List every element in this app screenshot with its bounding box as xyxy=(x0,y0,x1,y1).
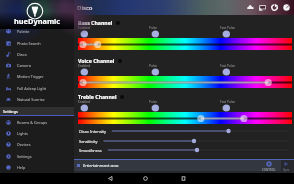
button[interactable]: Cast xyxy=(256,0,268,15)
staticText: Help xyxy=(17,165,26,170)
button[interactable]: Motion Trigger xyxy=(0,71,74,82)
staticText: Fast Pulse xyxy=(220,26,235,30)
staticText: Palette xyxy=(17,29,30,34)
staticText: Photo Search xyxy=(17,41,41,46)
button[interactable]: Entertainment area xyxy=(74,160,254,171)
staticText: Enabled xyxy=(78,64,91,68)
staticText: Fast Pulse xyxy=(220,64,235,68)
staticText: Sensitivity xyxy=(79,139,98,144)
button[interactable]: Devices xyxy=(0,139,74,150)
button[interactable]: Toggle Bass Channel xyxy=(78,19,120,26)
button[interactable]: Palette xyxy=(0,26,74,37)
staticText: CONTROL xyxy=(262,168,276,172)
staticText: Fast Pulse xyxy=(220,100,235,104)
button[interactable]: Disco xyxy=(0,49,74,60)
staticText: Pulse xyxy=(149,26,158,30)
staticText: Devices xyxy=(17,142,31,147)
staticText: Enabled xyxy=(78,100,91,104)
staticText: Motion Trigger xyxy=(17,74,44,79)
staticText: Settings xyxy=(17,154,32,159)
staticText: Rooms & Groups xyxy=(17,120,48,125)
button[interactable]: Disco Intensity xyxy=(78,126,292,136)
button[interactable]: Fast Pulse xyxy=(220,26,235,37)
button[interactable]: Toggle Treble Channel xyxy=(78,93,124,100)
staticText: Smoothness xyxy=(79,148,102,153)
button[interactable]: Settings xyxy=(0,151,74,162)
button[interactable]: CONTROL xyxy=(260,160,278,173)
button[interactable]: Fast Pulse xyxy=(220,64,235,75)
button[interactable]: Pulse xyxy=(149,100,159,111)
button[interactable]: Back xyxy=(105,173,116,184)
staticText: Bass Channel xyxy=(78,19,113,26)
button[interactable]: Help xyxy=(0,162,74,173)
button[interactable]: Natural Sunrise xyxy=(0,94,74,105)
staticText: Voice Channel xyxy=(78,57,115,64)
staticText: Treble Channel xyxy=(78,93,117,100)
button[interactable]: Fast Pulse xyxy=(220,100,235,111)
button[interactable]: Enabled xyxy=(78,26,91,37)
button[interactable]: Photo Search xyxy=(0,38,74,49)
button[interactable]: Toggle Voice Channel xyxy=(78,57,122,64)
staticText: Camera xyxy=(17,63,31,68)
button[interactable]: Recent apps xyxy=(178,173,189,184)
button[interactable]: Treble Channel colour range xyxy=(78,112,292,124)
staticText: Lights xyxy=(17,131,28,136)
button[interactable]: More options xyxy=(280,0,292,15)
button[interactable]: Sensitivity xyxy=(78,136,292,146)
button[interactable]: Enabled xyxy=(78,100,91,111)
button[interactable]: Voice Channel colour range xyxy=(78,76,292,88)
button[interactable]: Pulse xyxy=(149,64,159,75)
staticText: Disco xyxy=(17,52,27,57)
button[interactable]: Bass Channel colour range xyxy=(78,38,292,50)
button[interactable]: Camera xyxy=(0,60,74,71)
button[interactable]: Home xyxy=(140,173,151,184)
button[interactable]: Sync xyxy=(277,160,294,173)
staticText: Natural Sunrise xyxy=(17,97,45,102)
staticText: Disco Intensity xyxy=(79,129,106,134)
button[interactable]: Full Asleep Light xyxy=(0,83,74,94)
button[interactable]: Pulse xyxy=(149,26,159,37)
button[interactable]: Lights xyxy=(0,128,74,139)
staticText: hueDynamic xyxy=(14,16,61,26)
button[interactable]: Refresh xyxy=(268,0,280,15)
staticText: Entertainment area xyxy=(83,163,119,168)
staticText: Pulse xyxy=(149,100,158,104)
staticText: Full Asleep Light xyxy=(17,86,47,91)
button[interactable]: Rooms & Groups xyxy=(0,117,74,128)
staticText: Enabled xyxy=(78,26,91,30)
button[interactable]: Enabled xyxy=(78,64,91,75)
button[interactable]: Smoothness xyxy=(78,145,292,155)
staticText: Disco xyxy=(77,4,93,12)
staticText: Settings xyxy=(3,109,18,114)
staticText: Pulse xyxy=(149,64,158,68)
button[interactable]: Cloud xyxy=(244,0,256,15)
staticText: Sync xyxy=(283,168,290,172)
